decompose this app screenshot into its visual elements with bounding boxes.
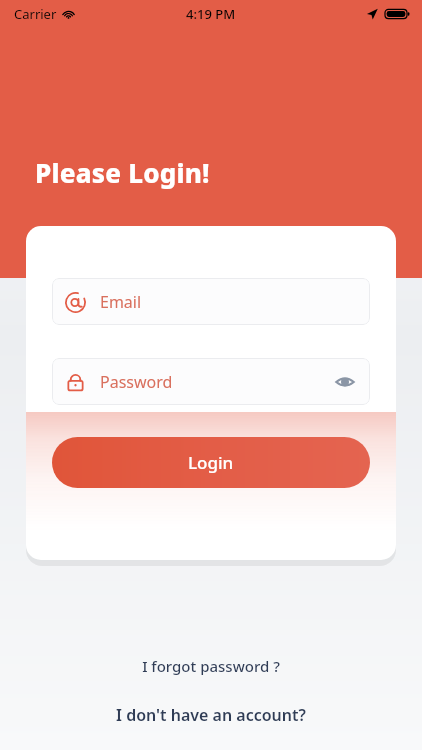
staticText: Login: [188, 451, 234, 474]
staticText: I forgot password ?: [142, 656, 280, 676]
staticText: Password: [100, 371, 173, 393]
button[interactable]: Password: [52, 358, 370, 405]
button[interactable]: Email: [52, 278, 370, 325]
button[interactable]: I don't have an account?: [0, 699, 422, 731]
staticText: 4:19 PM: [186, 5, 236, 23]
staticText: Please Login!: [35, 155, 210, 190]
staticText: Carrier: [14, 5, 57, 23]
button[interactable]: Login: [52, 437, 370, 488]
button[interactable]: I forgot password ?: [0, 650, 422, 682]
staticText: I don't have an account?: [116, 704, 306, 726]
button[interactable]: Show password: [332, 369, 358, 395]
staticText: Email: [100, 291, 142, 313]
